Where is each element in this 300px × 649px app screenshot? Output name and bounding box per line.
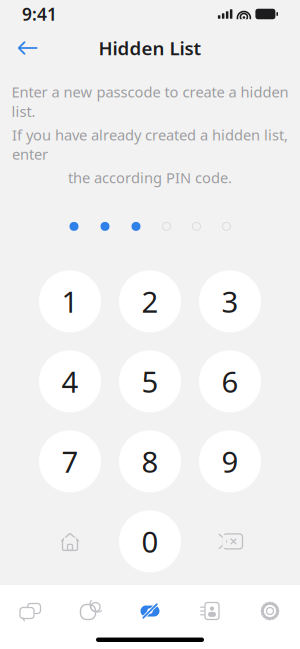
button[interactable]: 7 (39, 430, 101, 492)
staticText: 1 (61, 282, 78, 321)
staticText: 9 (221, 442, 238, 481)
staticText: Hidden List (98, 36, 201, 60)
staticText: the according PIN code. (68, 168, 232, 187)
staticText: 7 (61, 442, 78, 481)
staticText: 4 (61, 362, 78, 401)
staticText: 5 (141, 362, 158, 401)
button[interactable]: 4 (39, 350, 101, 412)
button[interactable]: 1 (39, 270, 101, 332)
button[interactable]: Contacts (180, 589, 240, 633)
staticText: 3 (221, 282, 238, 321)
button[interactable]: Delete (199, 510, 261, 572)
staticText: 0 (141, 522, 158, 561)
button[interactable]: 3 (199, 270, 261, 332)
staticText: 2 (141, 282, 158, 321)
button[interactable]: Hidden List (120, 589, 180, 633)
button[interactable]: Settings (240, 589, 300, 633)
staticText: Enter a new passcode to create a hidden … (11, 82, 288, 121)
button[interactable]: Messages (0, 589, 60, 633)
button[interactable]: 6 (199, 350, 261, 412)
staticText: 6 (221, 362, 238, 401)
staticText: If you have already created a hidden lis… (12, 125, 288, 164)
staticText: 9:41 (22, 2, 57, 25)
button[interactable]: 2 (119, 270, 181, 332)
button[interactable]: 9 (199, 430, 261, 492)
button[interactable]: 5 (119, 350, 181, 412)
button[interactable]: 0 (119, 510, 181, 572)
staticText: 8 (141, 442, 158, 481)
button[interactable]: Back (8, 31, 48, 65)
button[interactable]: Calls (60, 589, 120, 633)
button[interactable]: Home (39, 510, 101, 572)
button[interactable]: 8 (119, 430, 181, 492)
